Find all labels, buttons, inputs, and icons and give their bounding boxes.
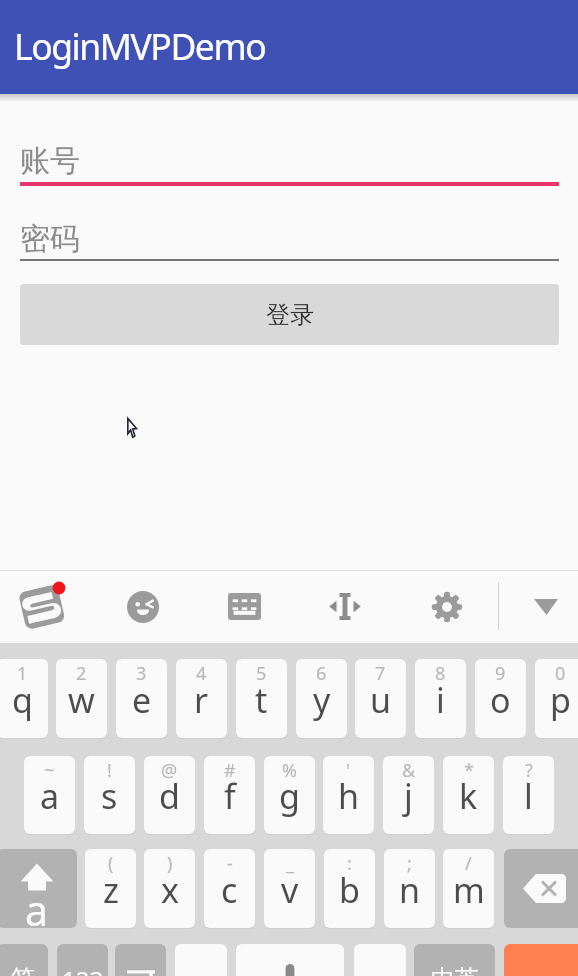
staticText: 2 (76, 661, 87, 686)
staticText: ~ (44, 758, 55, 783)
staticText: y (313, 677, 331, 723)
staticText: 6 (316, 661, 327, 686)
button[interactable]: 7 (355, 659, 406, 738)
staticText: _ (286, 851, 294, 876)
button[interactable]: key (414, 944, 495, 976)
staticText: a (25, 882, 49, 928)
staticText: ? (525, 758, 533, 783)
staticText: / (465, 851, 472, 876)
button[interactable]: # (204, 756, 255, 834)
button[interactable]: 4 (176, 659, 227, 738)
staticText: 5 (256, 661, 267, 686)
staticText: t (255, 677, 268, 723)
button[interactable]: 0 (535, 659, 578, 738)
button[interactable]: Settings (411, 570, 483, 643)
button[interactable]: : (324, 849, 375, 928)
button[interactable]: & (383, 756, 434, 834)
button[interactable]: key (354, 944, 406, 976)
staticText: % (282, 758, 297, 783)
staticText: a (40, 773, 60, 819)
staticText: c (221, 867, 238, 913)
staticText: 8 (435, 661, 446, 686)
staticText: l (524, 773, 533, 819)
staticText: 7 (375, 661, 386, 686)
button[interactable]: key (236, 944, 344, 976)
button[interactable]: 3 (116, 659, 167, 738)
button[interactable]: 2 (56, 659, 107, 738)
button[interactable]: 1 (0, 659, 48, 738)
staticText: 9 (495, 661, 506, 686)
button[interactable]: key (0, 944, 48, 976)
staticText: & (402, 758, 416, 783)
staticText: o (490, 677, 511, 723)
staticText: 123 (62, 963, 104, 976)
button[interactable]: 9 (475, 659, 526, 738)
button[interactable]: Move cursor (309, 570, 381, 643)
staticText: z (103, 867, 119, 913)
staticText: x (161, 867, 179, 913)
button[interactable]: ) (144, 849, 195, 928)
button[interactable]: Hide keyboard (510, 570, 578, 643)
staticText: 密码 (20, 220, 80, 258)
staticText: : (347, 851, 352, 876)
button[interactable]: Emoji (107, 570, 179, 643)
button[interactable]: - (204, 849, 255, 928)
staticText: ! (107, 758, 112, 783)
button[interactable]: Sogou input method (7, 570, 79, 643)
button[interactable]: Keyboard layout (208, 570, 280, 643)
staticText: r (194, 677, 209, 723)
button[interactable]: * (443, 756, 494, 834)
staticText: w (68, 677, 95, 723)
staticText: f (224, 773, 236, 819)
button[interactable]: Backspace (504, 849, 578, 928)
button[interactable]: Shift (0, 849, 77, 928)
staticText: 符 (11, 964, 35, 976)
button[interactable]: ! (84, 756, 135, 834)
button[interactable]: % (264, 756, 315, 834)
staticText: 0 (555, 661, 566, 686)
staticText: 账号 (20, 142, 80, 180)
button[interactable]: 账号 (20, 140, 559, 186)
staticText: LoginMVPDemo (14, 22, 266, 70)
button[interactable]: 密码 (20, 218, 559, 261)
staticText: ; (407, 851, 412, 876)
button[interactable]: 5 (236, 659, 287, 738)
button[interactable]: key (115, 944, 166, 976)
button[interactable]: key (57, 944, 108, 976)
staticText: s (101, 773, 118, 819)
button[interactable]: ; (384, 849, 435, 928)
staticText: @ (161, 758, 178, 783)
staticText: 3 (136, 661, 147, 686)
button[interactable]: ~ (24, 756, 75, 834)
button[interactable]: 登录 (20, 284, 559, 345)
staticText: d (159, 773, 180, 819)
button[interactable]: @ (144, 756, 195, 834)
button[interactable]: 8 (415, 659, 466, 738)
staticText: k (459, 773, 478, 819)
button[interactable]: ( (85, 849, 136, 928)
button[interactable]: key (504, 944, 578, 976)
staticText: i (436, 677, 445, 723)
staticText: b (339, 867, 360, 913)
staticText: # (224, 758, 236, 783)
button[interactable]: 6 (296, 659, 347, 738)
button[interactable]: ? (503, 756, 554, 834)
staticText: h (338, 773, 360, 819)
staticText: * (464, 758, 474, 783)
staticText: 登录 (266, 300, 314, 330)
button[interactable]: ' (323, 756, 374, 834)
staticText: ) (167, 851, 173, 876)
staticText: q (12, 677, 33, 723)
staticText: 中英 (431, 964, 479, 976)
staticText: g (279, 773, 300, 819)
button[interactable]: / (443, 849, 494, 928)
staticText: p (550, 677, 571, 723)
staticText: 1 (17, 661, 28, 686)
staticText: v (281, 867, 299, 913)
button[interactable]: key (175, 944, 227, 976)
staticText: ' (346, 758, 351, 783)
staticText: j (404, 773, 413, 819)
button[interactable]: _ (264, 849, 315, 928)
